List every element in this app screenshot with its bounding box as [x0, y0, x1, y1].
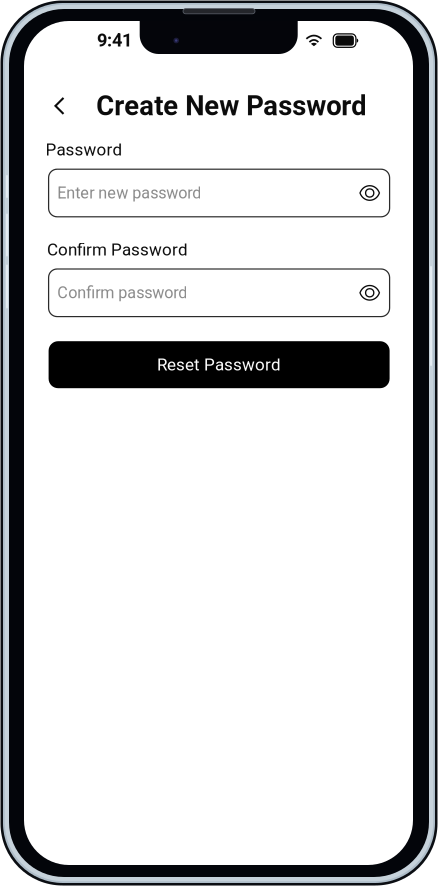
staticText: Reset Password: [157, 355, 281, 375]
staticText: Enter new password: [57, 183, 201, 202]
staticText: Confirm password: [57, 283, 187, 302]
staticText: 9:41: [97, 30, 132, 51]
staticText: Password: [45, 140, 122, 160]
staticText: Confirm Password: [47, 240, 188, 260]
button[interactable]: Enter new password: [49, 169, 390, 217]
button[interactable]: Reset Password: [49, 341, 390, 388]
staticText: Create New Password: [96, 90, 366, 122]
button[interactable]: Confirm password: [49, 269, 390, 317]
button[interactable]: Back: [42, 86, 76, 126]
